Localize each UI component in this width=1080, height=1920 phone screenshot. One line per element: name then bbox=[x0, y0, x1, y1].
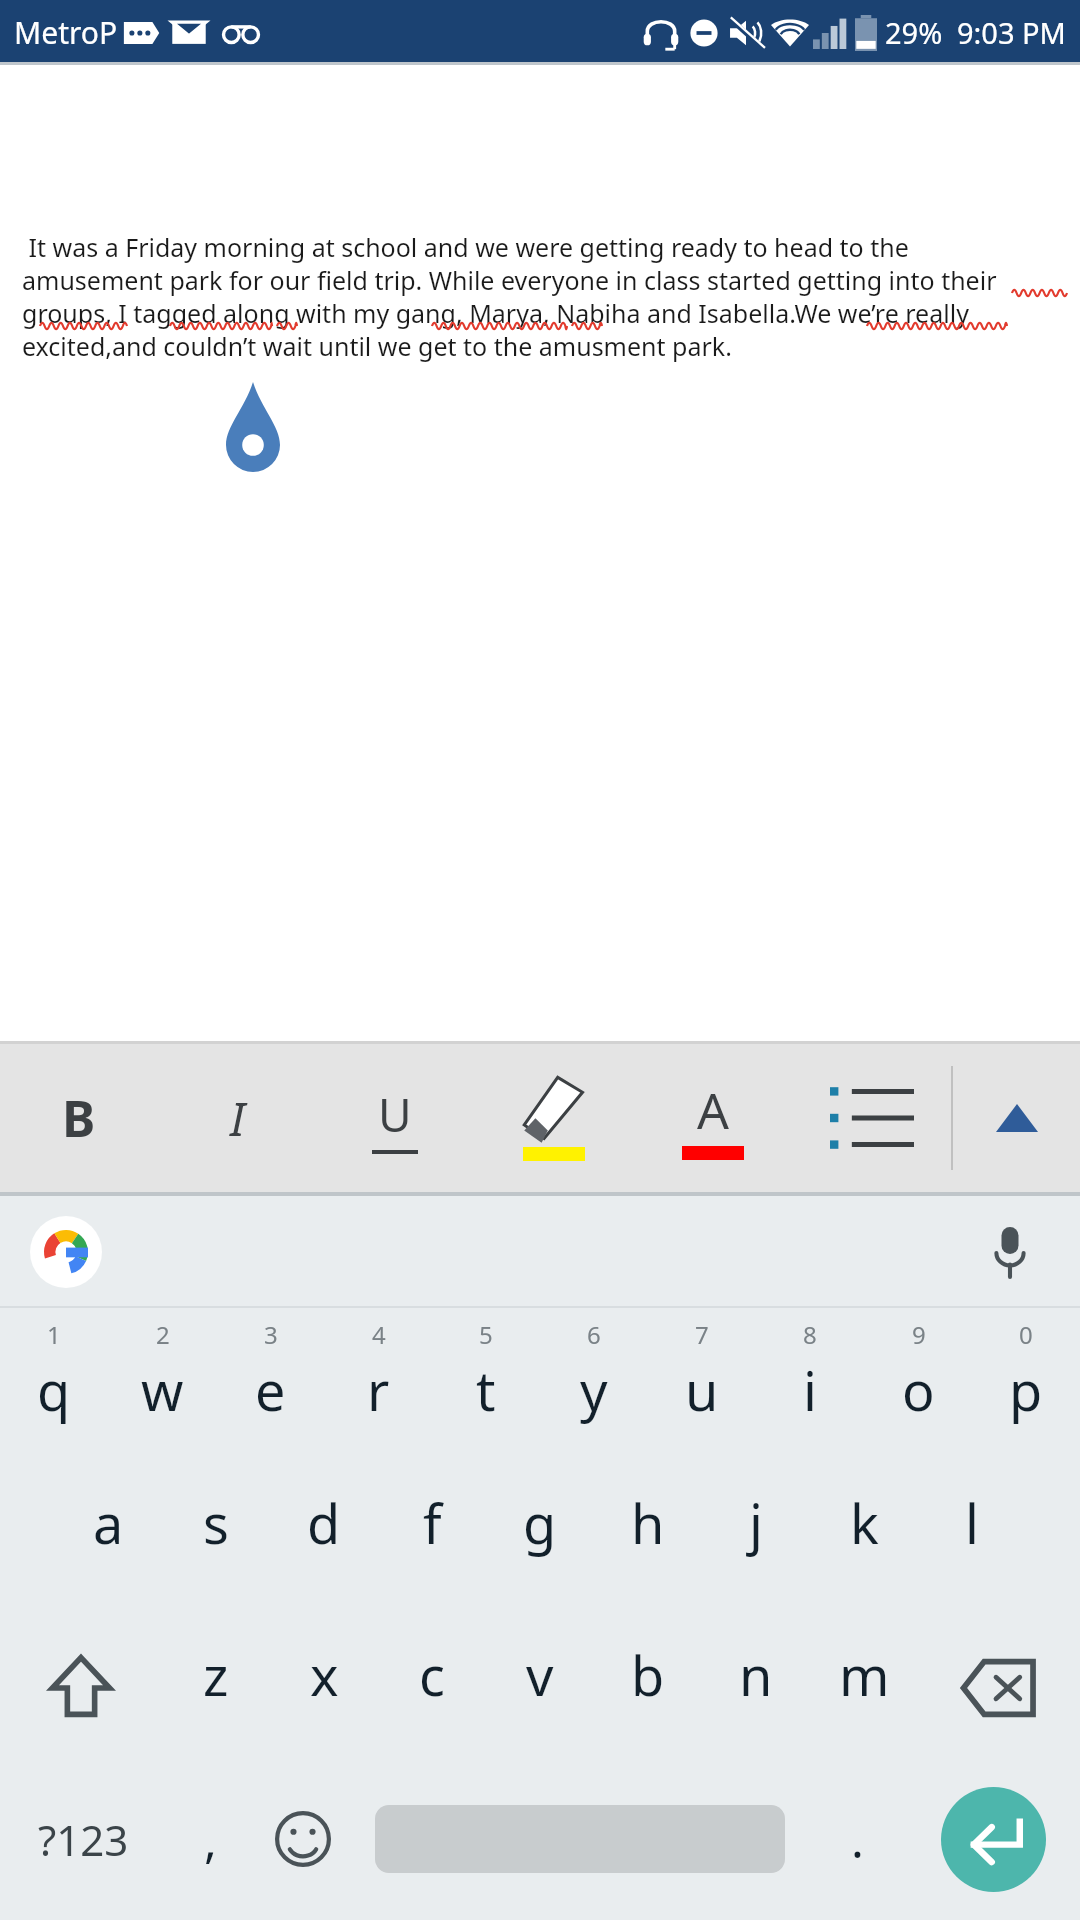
staticText: q bbox=[37, 1353, 71, 1427]
staticText: 1 bbox=[47, 1318, 61, 1351]
staticText: , bbox=[204, 1807, 217, 1872]
button[interactable]: f bbox=[378, 1460, 486, 1612]
staticText: p bbox=[1009, 1353, 1043, 1427]
button[interactable]: j bbox=[702, 1460, 810, 1612]
button[interactable]: Shift bbox=[0, 1612, 162, 1764]
button[interactable]: It was a Friday morning at school and we… bbox=[0, 65, 1080, 1041]
staticText: z bbox=[203, 1638, 229, 1712]
button[interactable]: Highlight bbox=[474, 1044, 633, 1192]
staticText: t bbox=[476, 1353, 496, 1427]
button[interactable]: Expand toolbar bbox=[953, 1044, 1080, 1192]
staticText: s bbox=[203, 1486, 229, 1560]
button[interactable]: Text color bbox=[633, 1044, 792, 1192]
button[interactable]: 3 bbox=[216, 1308, 324, 1460]
button[interactable]: d bbox=[270, 1460, 378, 1612]
button[interactable]: Bold bbox=[0, 1044, 158, 1192]
staticText: ?123 bbox=[38, 1811, 129, 1868]
staticText: 5 bbox=[479, 1318, 493, 1351]
staticText: B bbox=[62, 1084, 96, 1152]
staticText: 29% bbox=[885, 13, 943, 52]
button[interactable]: z bbox=[162, 1612, 270, 1764]
button[interactable]: 8 bbox=[756, 1308, 864, 1460]
staticText: f bbox=[423, 1486, 442, 1560]
staticText: r bbox=[367, 1353, 390, 1427]
button[interactable]: Underline bbox=[316, 1044, 474, 1192]
staticText: u bbox=[685, 1353, 719, 1427]
staticText: n bbox=[739, 1638, 773, 1712]
button[interactable]: l bbox=[918, 1460, 1026, 1612]
staticText: 0 bbox=[1019, 1318, 1033, 1351]
button[interactable]: g bbox=[486, 1460, 594, 1612]
button[interactable]: s bbox=[162, 1460, 270, 1612]
staticText: b bbox=[631, 1638, 665, 1712]
staticText: e bbox=[255, 1353, 286, 1427]
staticText: 9 bbox=[912, 1318, 926, 1351]
staticText: a bbox=[93, 1486, 124, 1560]
button[interactable]: Bulleted list bbox=[792, 1044, 951, 1192]
button[interactable]: Italic bbox=[158, 1044, 316, 1192]
button[interactable]: ?123 bbox=[0, 1764, 167, 1914]
button[interactable]: k bbox=[810, 1460, 918, 1612]
button[interactable]: c bbox=[378, 1612, 486, 1764]
staticText: w bbox=[141, 1353, 184, 1427]
button[interactable]: 0 bbox=[972, 1308, 1080, 1460]
staticText: U bbox=[378, 1083, 412, 1146]
button[interactable]: m bbox=[810, 1612, 918, 1764]
button[interactable]: b bbox=[594, 1612, 702, 1764]
button[interactable]: 4 bbox=[324, 1308, 432, 1460]
staticText: h bbox=[631, 1486, 665, 1560]
staticText: m bbox=[839, 1638, 890, 1712]
staticText: It was a Friday morning at school and we… bbox=[22, 230, 1042, 363]
staticText: A bbox=[697, 1076, 729, 1144]
button[interactable]: 9 bbox=[864, 1308, 972, 1460]
button[interactable]: a bbox=[54, 1460, 162, 1612]
button[interactable]: Voice input bbox=[978, 1220, 1042, 1284]
staticText: k bbox=[850, 1486, 879, 1560]
staticText: 3 bbox=[264, 1318, 278, 1351]
button[interactable]: Backspace bbox=[918, 1612, 1080, 1764]
staticText: 8 bbox=[803, 1318, 817, 1351]
staticText: c bbox=[419, 1638, 445, 1712]
staticText: j bbox=[749, 1486, 763, 1560]
staticText: d bbox=[307, 1486, 341, 1560]
staticText: 4 bbox=[372, 1318, 386, 1351]
button[interactable]: Google search bbox=[30, 1216, 102, 1288]
staticText: MetroP bbox=[14, 12, 118, 53]
button[interactable]: . bbox=[808, 1764, 906, 1914]
staticText: x bbox=[310, 1638, 339, 1712]
staticText: l bbox=[965, 1486, 979, 1560]
staticText: I bbox=[230, 1087, 245, 1150]
button[interactable]: Enter bbox=[941, 1787, 1046, 1892]
button[interactable]: Emoji bbox=[254, 1764, 352, 1914]
staticText: 7 bbox=[695, 1318, 709, 1351]
button[interactable]: x bbox=[270, 1612, 378, 1764]
staticText: 2 bbox=[156, 1318, 170, 1351]
staticText: o bbox=[902, 1353, 935, 1427]
button[interactable]: 5 bbox=[432, 1308, 540, 1460]
staticText: . bbox=[851, 1807, 864, 1872]
staticText: y bbox=[580, 1353, 608, 1427]
staticText: 6 bbox=[587, 1318, 601, 1351]
button[interactable]: 6 bbox=[540, 1308, 648, 1460]
button[interactable]: 2 bbox=[108, 1308, 216, 1460]
button[interactable]: , bbox=[167, 1764, 254, 1914]
button[interactable]: 7 bbox=[648, 1308, 756, 1460]
button[interactable]: v bbox=[486, 1612, 594, 1764]
staticText: 9:03 PM bbox=[957, 13, 1066, 52]
staticText: v bbox=[526, 1638, 554, 1712]
button[interactable]: Space bbox=[352, 1764, 808, 1914]
button[interactable]: h bbox=[594, 1460, 702, 1612]
staticText: g bbox=[523, 1486, 557, 1560]
button[interactable]: n bbox=[702, 1612, 810, 1764]
button[interactable]: 1 bbox=[0, 1308, 108, 1460]
staticText: i bbox=[803, 1353, 817, 1427]
